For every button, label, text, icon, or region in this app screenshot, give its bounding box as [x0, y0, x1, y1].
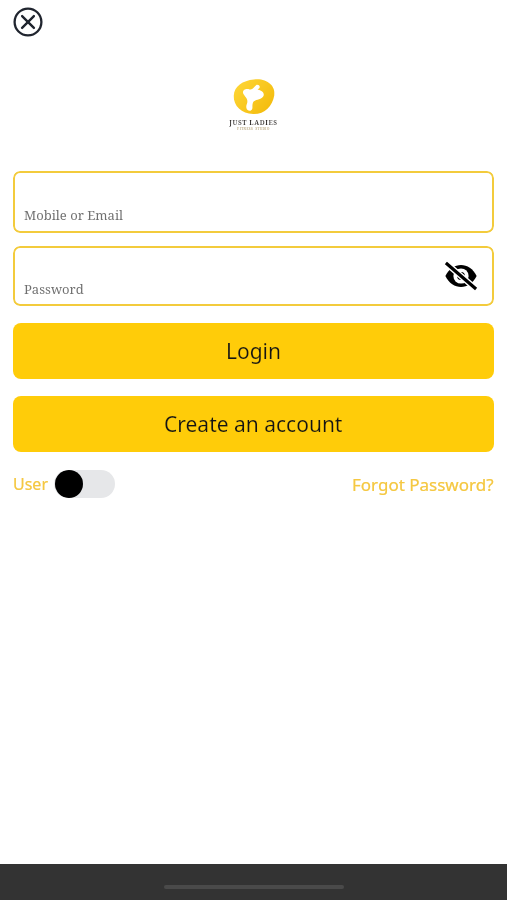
button[interactable]: User [13, 470, 115, 498]
staticText: FITNESS STUDIO [237, 127, 270, 131]
staticText: Forgot Password? [352, 473, 494, 496]
staticText: Mobile or Email [24, 206, 124, 224]
staticText: User [13, 473, 48, 495]
staticText: JUST LADIES [229, 118, 278, 127]
button[interactable]: Forgot Password? [352, 473, 494, 496]
staticText: Login [226, 337, 282, 366]
button[interactable]: Show password [441, 256, 481, 296]
button[interactable]: Mobile or Email [13, 171, 494, 233]
staticText: Create an account [164, 410, 343, 439]
button[interactable]: Close [9, 3, 47, 41]
button[interactable]: Password [13, 246, 494, 306]
staticText: Password [24, 280, 84, 298]
button[interactable]: Create an account [13, 396, 494, 452]
button[interactable]: Login [13, 323, 494, 379]
